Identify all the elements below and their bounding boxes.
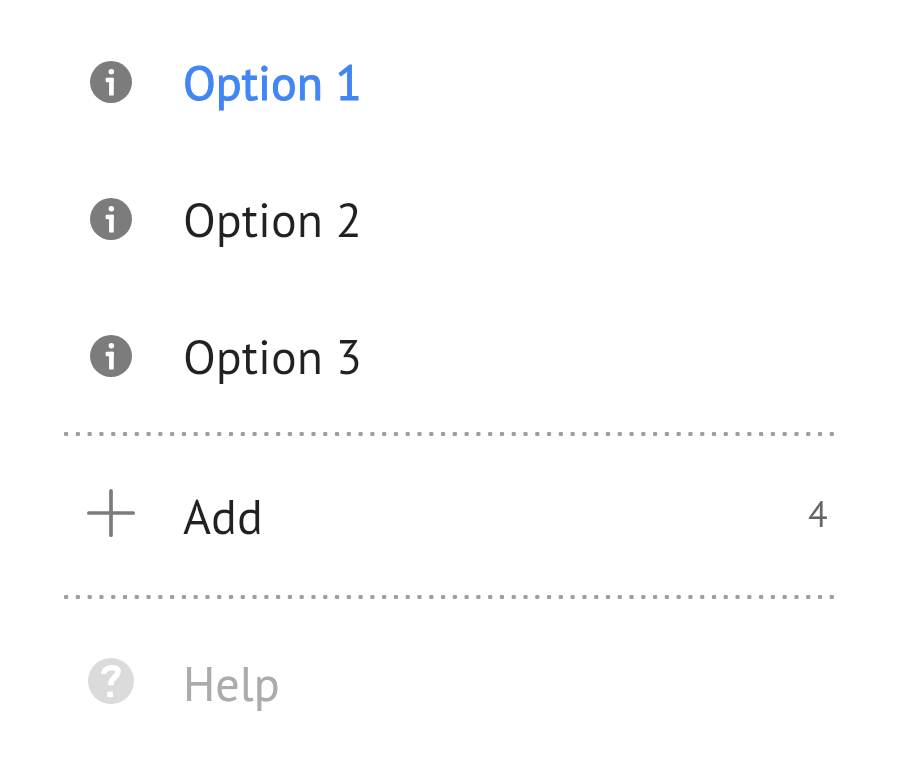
staticText: 4 <box>808 490 828 537</box>
staticText: Help <box>183 652 280 712</box>
staticText: Option 3 <box>183 325 362 385</box>
staticText: Add <box>183 485 263 545</box>
button[interactable]: Help <box>0 651 907 711</box>
button[interactable]: Add <box>0 483 907 543</box>
staticText: Option 2 <box>183 188 362 248</box>
staticText: Option 1 <box>183 51 362 111</box>
button[interactable]: Option 1 <box>0 52 907 112</box>
button[interactable]: Option 3 <box>0 326 907 386</box>
staticText: Option 1 <box>183 51 362 111</box>
button[interactable]: Option 2 <box>0 189 907 249</box>
